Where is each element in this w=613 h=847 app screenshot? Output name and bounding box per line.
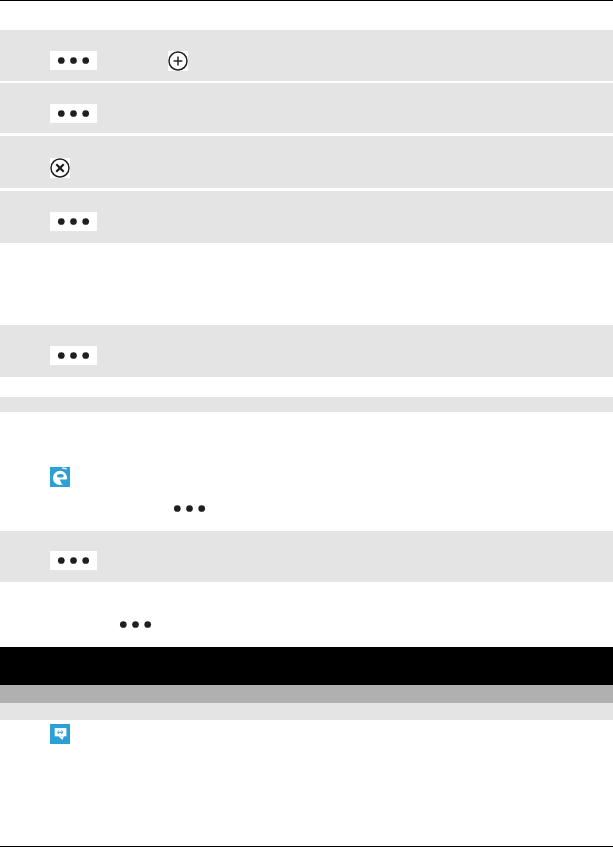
button[interactable]: More options bbox=[166, 499, 213, 518]
button[interactable]: More options bbox=[112, 615, 159, 634]
button[interactable]: List item 6 bbox=[0, 531, 613, 582]
button[interactable]: More options bbox=[50, 51, 97, 70]
button[interactable]: Close bbox=[50, 158, 70, 178]
button[interactable]: Messages bbox=[50, 724, 70, 744]
button[interactable]: More options bbox=[50, 212, 97, 231]
button[interactable]: List item 4 bbox=[0, 191, 613, 243]
button[interactable]: List item 2 bbox=[0, 83, 613, 133]
button[interactable]: More options bbox=[50, 346, 97, 365]
button[interactable]: List item 3 bbox=[0, 136, 613, 188]
button[interactable]: Open in browser bbox=[50, 467, 70, 487]
button[interactable]: List item 5 bbox=[0, 325, 613, 377]
button[interactable]: More options bbox=[50, 104, 97, 123]
button[interactable]: Add bbox=[168, 51, 188, 71]
button[interactable]: More options bbox=[50, 551, 97, 570]
button[interactable]: List item 1 bbox=[0, 30, 613, 81]
